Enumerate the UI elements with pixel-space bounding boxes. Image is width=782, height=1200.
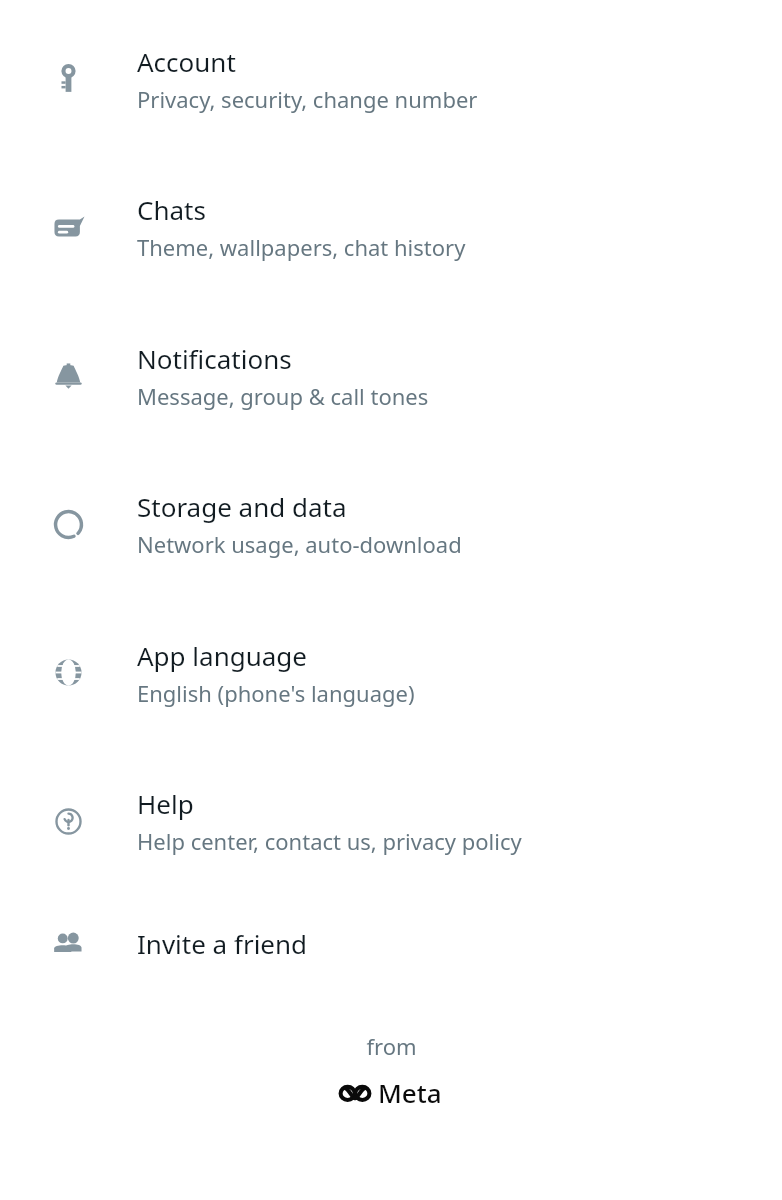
button[interactable]: Help [0, 747, 782, 895]
staticText: Account [137, 44, 236, 79]
staticText: Meta [378, 1075, 442, 1110]
button[interactable]: App language [0, 598, 782, 747]
other: Storage and data [0, 450, 137, 598]
button[interactable]: Invite a friend [0, 895, 782, 991]
other: Account [0, 5, 137, 153]
staticText: Theme, wallpapers, chat history [137, 232, 466, 262]
staticText: Help [137, 786, 194, 821]
button[interactable]: Chats [0, 153, 782, 301]
staticText: Help center, contact us, privacy policy [137, 826, 522, 856]
staticText: Invite a friend [137, 926, 308, 961]
staticText: Message, group & call tones [137, 381, 429, 411]
button[interactable]: Storage and data [0, 450, 782, 598]
other: Chats [0, 153, 137, 301]
staticText: App language [137, 638, 308, 673]
staticText: English (phone's language) [137, 678, 415, 708]
staticText: Privacy, security, change number [137, 84, 478, 114]
button[interactable]: Account [0, 5, 782, 153]
staticText: Notifications [137, 341, 292, 376]
other: Help [0, 747, 137, 895]
button[interactable]: Notifications [0, 301, 782, 450]
staticText: from [366, 1031, 417, 1061]
staticText: Storage and data [137, 489, 347, 524]
staticText: Network usage, auto-download [137, 529, 462, 559]
staticText: Chats [137, 192, 206, 227]
other: Notifications [0, 301, 137, 450]
other: App language [0, 598, 137, 747]
other: Invite a friend [0, 895, 137, 991]
